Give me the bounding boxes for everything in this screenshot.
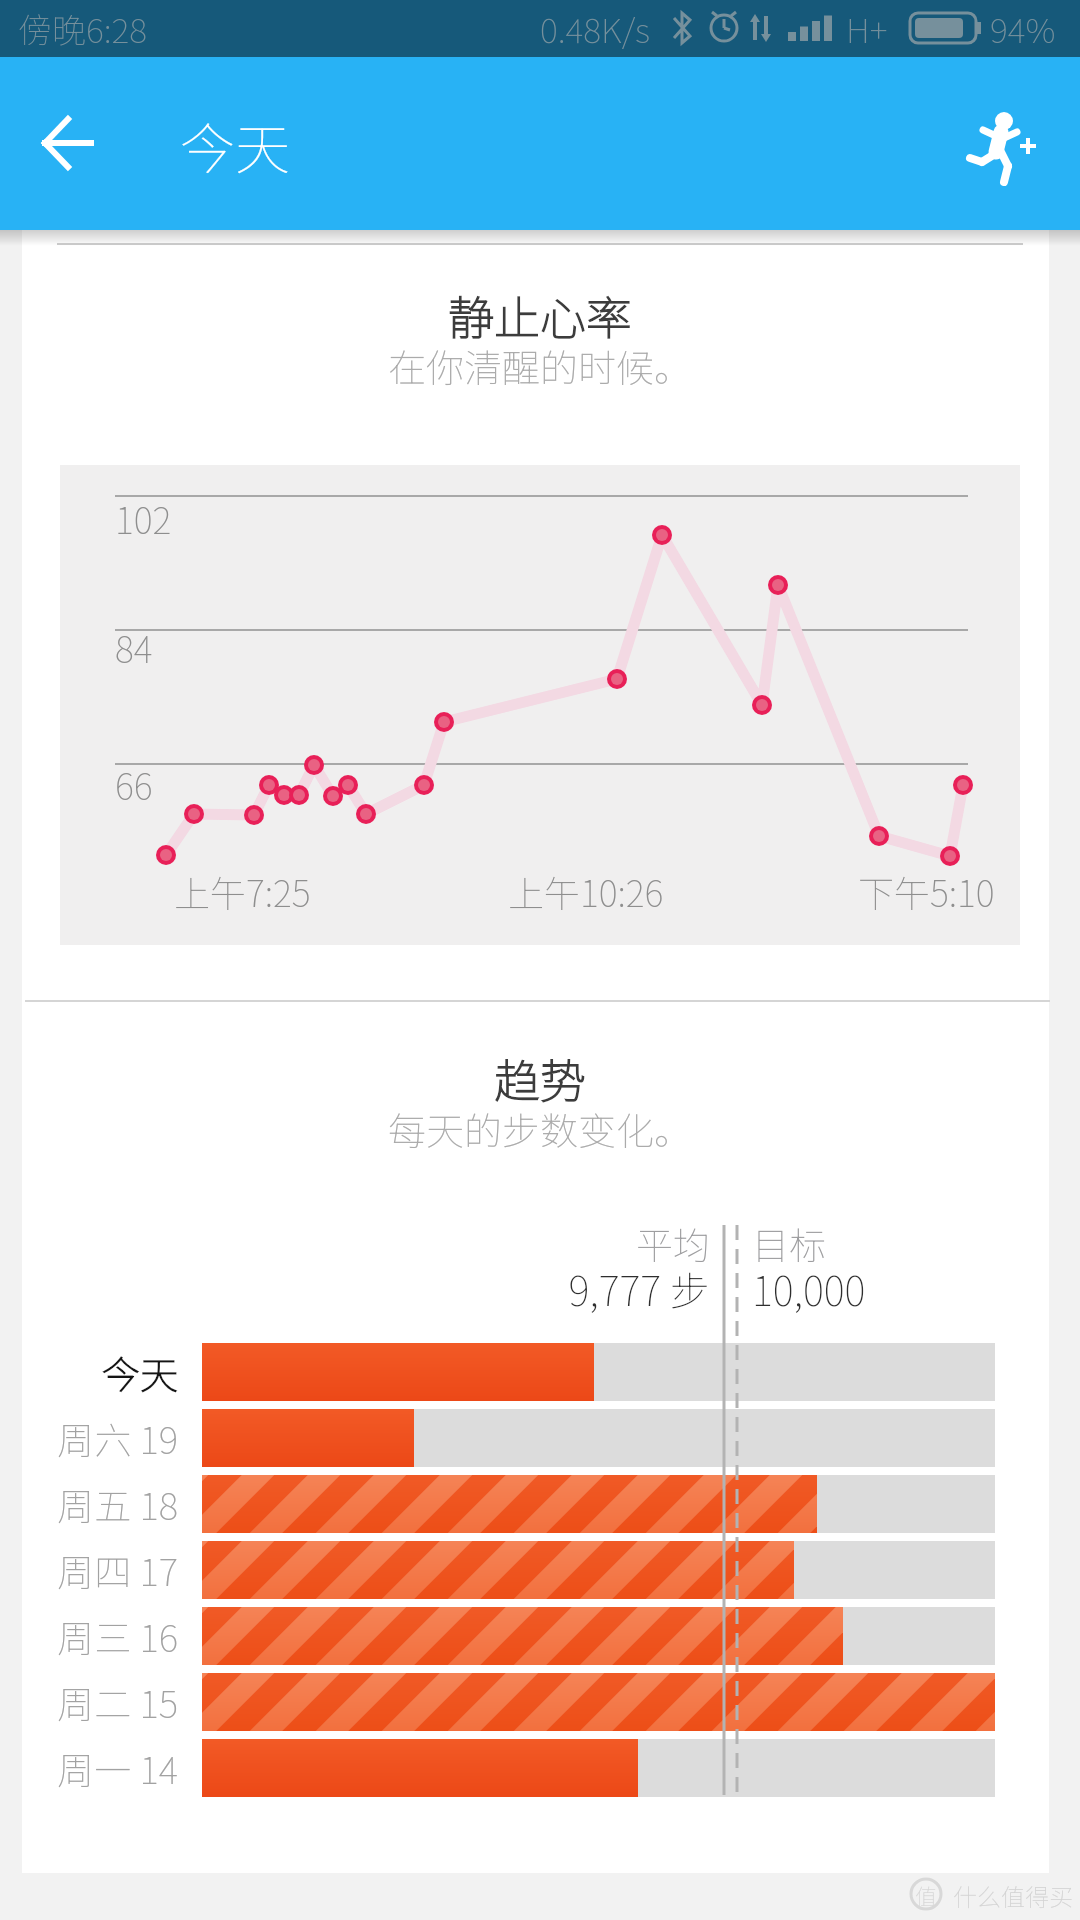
staticText: 94%: [990, 4, 1056, 53]
staticText: 在你清醒的时候。: [0, 338, 1080, 393]
staticText: 今天: [0, 1345, 178, 1400]
staticText: H+: [846, 4, 888, 53]
staticText: 0.48K/s: [540, 4, 651, 53]
staticText: 目标: [752, 1216, 826, 1270]
staticText: 周三 16: [0, 1609, 178, 1663]
staticText: 周四 17: [0, 1543, 178, 1597]
staticText: 上午7:25: [174, 865, 311, 917]
staticText: 66: [115, 758, 153, 810]
staticText: 102: [115, 492, 172, 544]
staticText: 84: [115, 621, 153, 673]
staticText: 每天的步数变化。: [0, 1101, 1080, 1156]
staticText: 静止心率: [0, 282, 1080, 349]
staticText: 平均: [510, 1216, 710, 1270]
staticText: 今天: [180, 105, 291, 185]
staticText: 9,777 步: [410, 1260, 710, 1318]
staticText: 周一 14: [0, 1741, 178, 1795]
staticText: 趋势: [0, 1045, 1080, 1112]
staticText: 什么值得买: [953, 1878, 1073, 1913]
staticText: 周六 19: [0, 1411, 178, 1465]
staticText: 10,000: [752, 1260, 866, 1318]
staticText: 值: [915, 1879, 938, 1911]
button[interactable]: [960, 100, 1055, 190]
staticText: 下午5:10: [858, 865, 995, 917]
staticText: 上午10:26: [508, 865, 664, 917]
staticText: 周五 18: [0, 1477, 178, 1531]
staticText: 周二 15: [0, 1675, 178, 1729]
staticText: 傍晚6:28: [18, 4, 147, 53]
button[interactable]: [25, 100, 115, 190]
